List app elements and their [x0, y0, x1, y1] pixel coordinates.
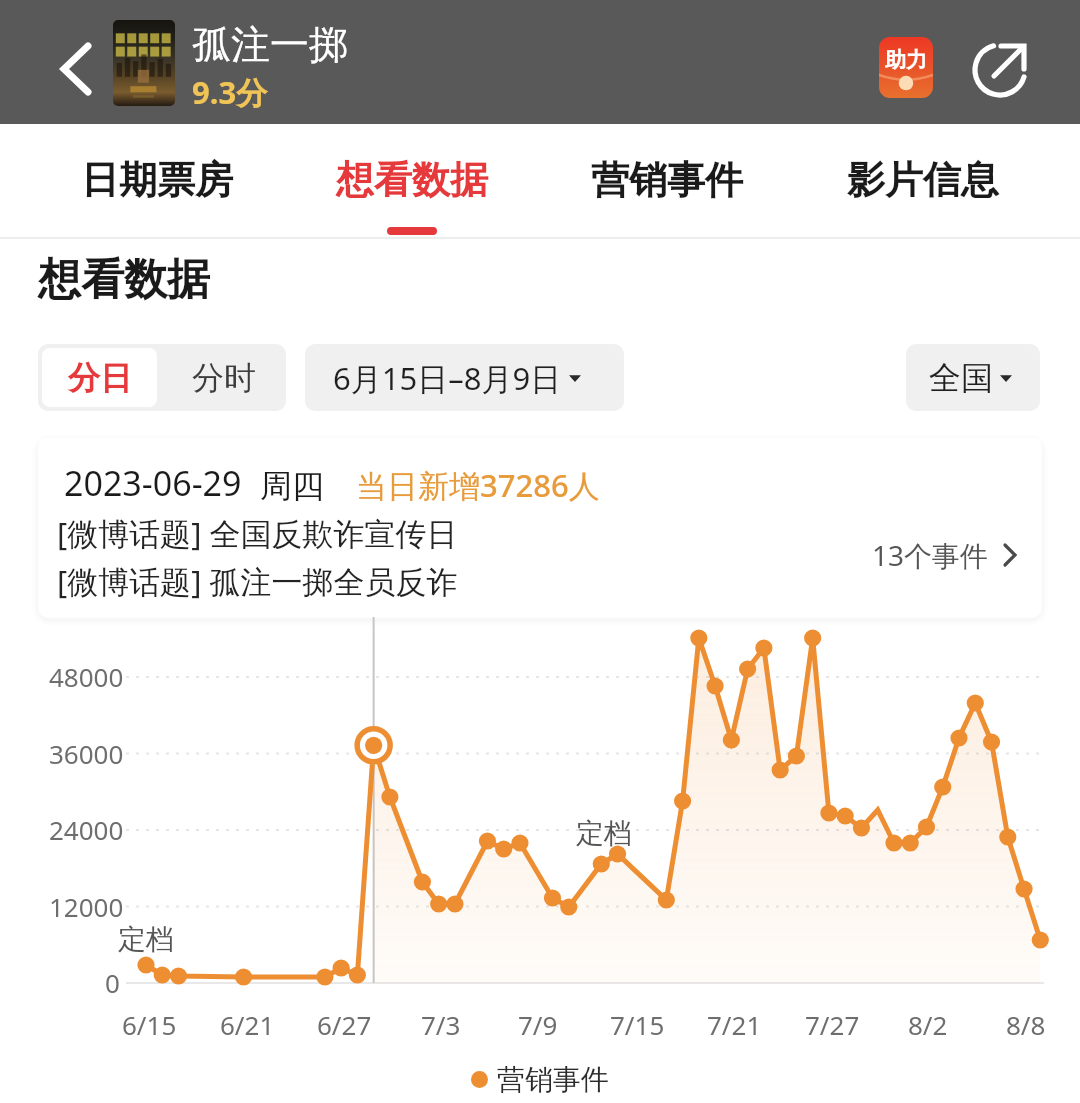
staticText: 分日: [68, 358, 132, 398]
staticText: 7/15: [610, 1007, 665, 1042]
staticText: 12000: [49, 889, 124, 924]
staticText: 7/9: [518, 1007, 558, 1042]
staticText: 影片信息: [847, 156, 999, 204]
staticText: 当日新增37286人: [356, 464, 600, 506]
staticText: 全国: [929, 358, 993, 398]
staticText: 9.3分: [192, 71, 268, 113]
staticText: [微博话题] 孤注一掷全员反诈: [57, 560, 458, 602]
staticText: 6/21: [220, 1007, 275, 1042]
staticText: 8/2: [908, 1007, 948, 1042]
staticText: 定档: [576, 816, 632, 851]
staticText: 7/21: [707, 1007, 762, 1042]
button[interactable]: 想看数据: [284, 124, 539, 239]
staticText: 0: [105, 965, 120, 1000]
staticText: 7/27: [805, 1007, 860, 1042]
staticText: 想看数据: [336, 156, 488, 204]
staticText: 营销事件: [497, 1062, 609, 1097]
staticText: 日期票房: [81, 156, 233, 204]
staticText: 8/8: [1006, 1007, 1046, 1042]
staticText: 36000: [49, 736, 124, 771]
button[interactable]: 2023-06-29: [38, 438, 1042, 618]
button[interactable]: Share: [967, 37, 1033, 103]
staticText: 助力: [885, 47, 927, 73]
button[interactable]: 分时: [161, 344, 286, 411]
button[interactable]: 分日: [42, 348, 157, 407]
staticText: [微博话题] 全国反欺诈宣传日: [57, 512, 458, 554]
button[interactable]: 6月15日–8月9日: [305, 344, 624, 411]
staticText: 6/15: [122, 1007, 177, 1042]
staticText: 6月15日–8月9日: [333, 357, 562, 399]
button[interactable]: 营销事件: [539, 124, 795, 239]
staticText: 2023-06-29: [64, 460, 242, 506]
button[interactable]: 助力: [879, 37, 933, 98]
staticText: 周四: [260, 466, 324, 506]
button[interactable]: 影片信息: [795, 124, 1051, 239]
staticText: 孤注一掷: [192, 20, 348, 69]
staticText: 24000: [49, 812, 124, 847]
button[interactable]: 日期票房: [29, 124, 284, 239]
button[interactable]: Back: [44, 37, 108, 101]
staticText: 7/3: [421, 1007, 461, 1042]
staticText: 6/27: [317, 1007, 372, 1042]
staticText: 分时: [192, 358, 256, 398]
staticText: 13个事件: [872, 536, 989, 574]
staticText: 想看数据: [38, 253, 210, 307]
staticText: 48000: [49, 659, 124, 694]
staticText: 定档: [118, 922, 174, 957]
button[interactable]: 全国: [906, 344, 1040, 411]
staticText: 营销事件: [591, 156, 743, 204]
